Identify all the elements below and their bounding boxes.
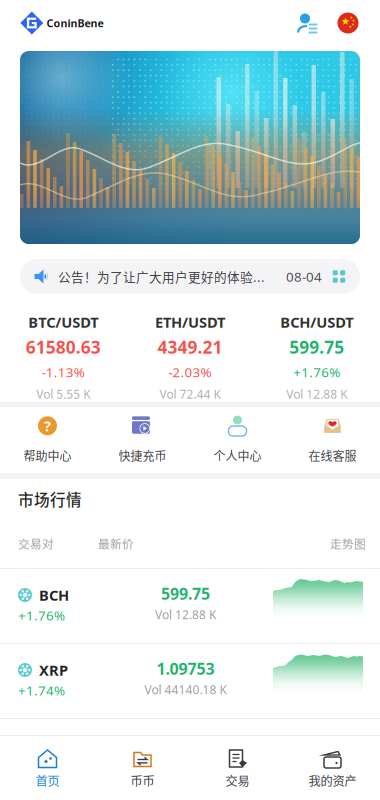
staticText: 我的资产 xyxy=(308,772,356,789)
button[interactable]: Language xyxy=(329,3,367,43)
staticText: Vol 12.88 K xyxy=(155,606,216,622)
staticText: 599.75 xyxy=(289,335,344,358)
button[interactable]: XRP xyxy=(0,644,380,718)
button[interactable]: 在线客服 xyxy=(285,407,380,473)
staticText: BTC/USDT xyxy=(28,312,98,332)
staticText: 交易对 xyxy=(18,535,54,552)
button[interactable]: 首页 xyxy=(0,750,95,787)
staticText: BCH xyxy=(39,585,69,605)
staticText: 个人中心 xyxy=(213,447,261,464)
staticText: 首页 xyxy=(35,772,59,789)
button[interactable]: 公告！为了让广大用户更好的体验... xyxy=(20,259,360,294)
staticText: 4349.21 xyxy=(157,335,222,358)
staticText: 走势图 xyxy=(330,535,366,552)
staticText: +1.76% xyxy=(18,606,65,624)
staticText: 599.75 xyxy=(161,583,210,604)
button[interactable]: 个人中心 xyxy=(190,407,285,473)
staticText: ConinBene xyxy=(47,16,104,30)
staticText: Vol 5.55 K xyxy=(36,386,90,402)
staticText: Vol 44140.18 K xyxy=(144,681,226,697)
staticText: 公告！为了让广大用户更好的体验... xyxy=(58,267,265,286)
staticText: +1.76% xyxy=(293,363,340,381)
staticText: +1.74% xyxy=(18,681,65,699)
staticText: -1.13% xyxy=(42,363,85,381)
staticText: 08-04 xyxy=(286,268,322,285)
staticText: 交易 xyxy=(225,772,249,789)
staticText: ETH/USDT xyxy=(155,312,225,332)
staticText: 1.09753 xyxy=(156,658,214,679)
staticText: 帮助中心 xyxy=(23,447,71,464)
staticText: 61580.63 xyxy=(26,335,101,358)
button[interactable]: 我的资产 xyxy=(285,750,380,787)
button[interactable]: 快捷充币 xyxy=(95,407,190,473)
staticText: Vol 72.44 K xyxy=(159,386,220,402)
button[interactable]: 交易 xyxy=(190,750,285,787)
staticText: -2.03% xyxy=(168,363,211,381)
staticText: 在线客服 xyxy=(308,447,356,464)
staticText: BCH/USDT xyxy=(280,312,353,332)
staticText: 最新价 xyxy=(98,535,134,552)
button[interactable]: Account xyxy=(285,3,329,43)
staticText: ? xyxy=(44,416,51,436)
staticText: Vol 12.88 K xyxy=(286,386,347,402)
button[interactable]: 币币 xyxy=(95,750,190,787)
staticText: 快捷充币 xyxy=(118,447,166,464)
staticText: 市场行情 xyxy=(18,488,82,510)
staticText: XRP xyxy=(39,660,68,680)
staticText: 币币 xyxy=(130,772,154,789)
button[interactable]: BCH xyxy=(0,569,380,643)
button[interactable]: ? xyxy=(0,407,95,473)
